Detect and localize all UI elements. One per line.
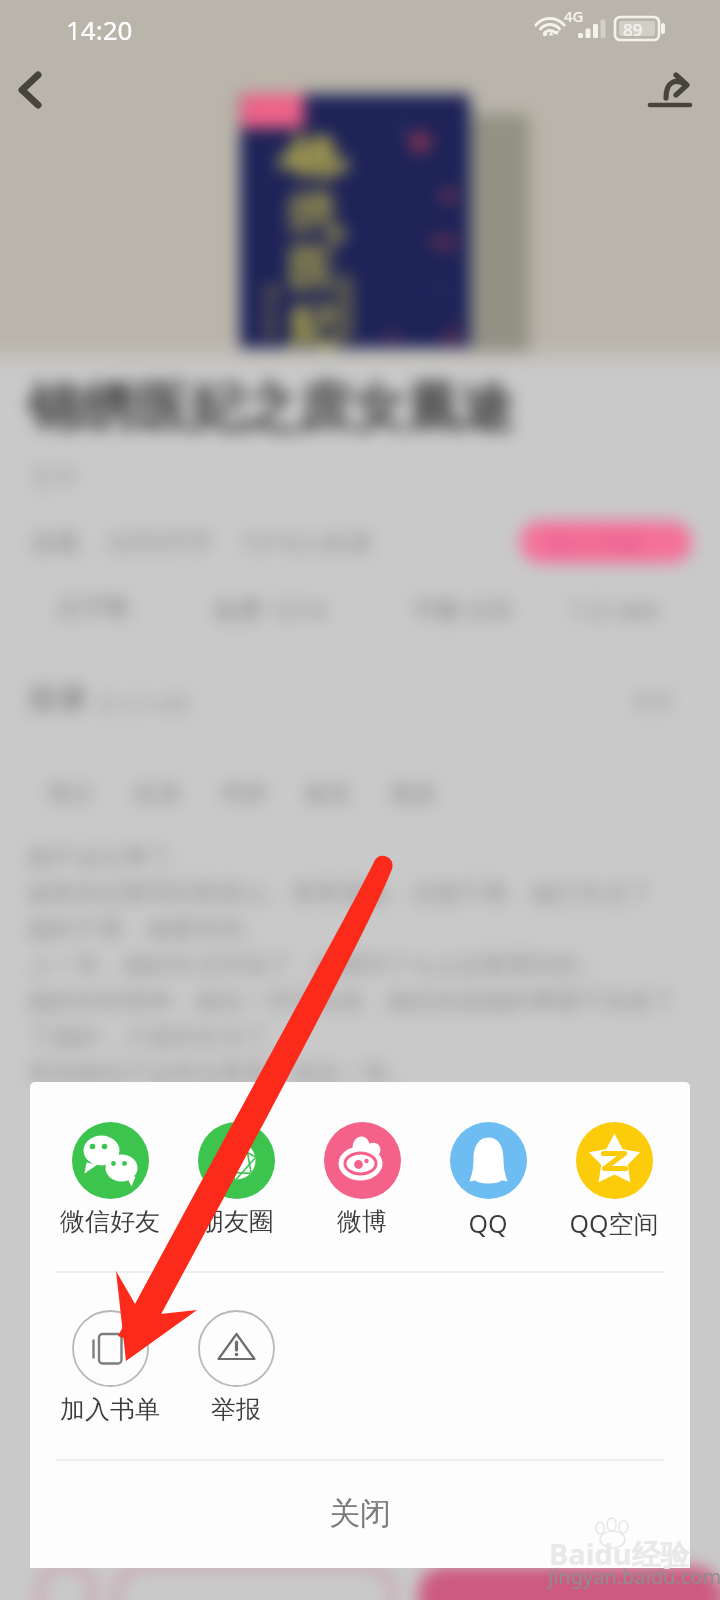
- staticText: 连载 2250万字 1214人在读: [30, 524, 372, 558]
- button[interactable]: 加入书单: [47, 1310, 173, 1425]
- staticText: 4G: [564, 6, 584, 26]
- staticText: 微博: [337, 1206, 387, 1237]
- staticText: 锦 绣 医 妃: [288, 128, 336, 356]
- button[interactable]: QQ空间: [551, 1122, 677, 1240]
- staticText: 加入书单: [60, 1394, 160, 1425]
- staticText: 她不会出事了。 她将来还要再到那座山，要看看她，还能不要，她已失去了 她的不要，…: [28, 842, 676, 1088]
- staticText: 字数 628: [412, 592, 512, 626]
- button[interactable]: 举报: [173, 1310, 299, 1425]
- button[interactable]: 微信好友: [47, 1122, 173, 1237]
- staticText: QQ空间: [569, 1206, 659, 1240]
- staticText: 总字数: [56, 592, 131, 623]
- button[interactable]: 微博: [299, 1122, 425, 1237]
- button[interactable]: 朋友圈: [173, 1122, 299, 1237]
- button[interactable]: Back: [2, 62, 58, 118]
- staticText: 朋友圈: [199, 1206, 274, 1237]
- button[interactable]: Share: [645, 66, 695, 116]
- staticText: 简介 目录 书评 相关 更多: [48, 776, 438, 809]
- staticText: jingyan.baidu.com: [548, 1563, 720, 1590]
- staticText: Baidu经验: [549, 1534, 690, 1574]
- staticText: QQ: [468, 1206, 508, 1240]
- button[interactable]: 关闭: [30, 1460, 690, 1566]
- staticText: 关闭: [329, 1494, 391, 1533]
- staticText: 1.2 rate: [570, 592, 659, 626]
- staticText: 加入书架: [548, 529, 644, 559]
- staticText: 目录: [28, 680, 88, 718]
- staticText: 锦绣医妃之庶女凰途: [28, 374, 514, 442]
- staticText: 14:20: [66, 12, 133, 47]
- staticText: 微信好友: [60, 1206, 160, 1237]
- staticText: 免费 1214: [212, 592, 326, 626]
- button[interactable]: QQ: [425, 1122, 551, 1240]
- staticText: 89: [623, 18, 643, 41]
- staticText: 举报: [211, 1394, 261, 1425]
